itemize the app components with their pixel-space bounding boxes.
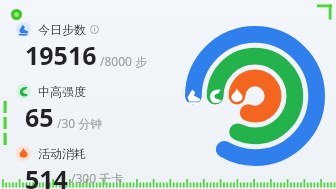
staticText: 19516 bbox=[25, 38, 97, 72]
staticText: 65 bbox=[25, 100, 54, 134]
button[interactable]: Activity rings bbox=[184, 25, 326, 167]
staticText: /300 千卡 bbox=[71, 170, 124, 186]
staticText: 活动消耗 bbox=[38, 146, 86, 161]
staticText: 今日步数 bbox=[38, 22, 86, 37]
button[interactable]: 活动消耗 bbox=[16, 146, 124, 189]
staticText: 中高强度 bbox=[38, 84, 86, 99]
button[interactable]: 中高强度 bbox=[16, 84, 103, 134]
staticText: /8000 步 bbox=[100, 53, 148, 69]
staticText: 514 bbox=[25, 162, 68, 189]
button[interactable]: 今日步数 bbox=[16, 22, 148, 72]
staticText: /30 分钟 bbox=[57, 115, 103, 131]
